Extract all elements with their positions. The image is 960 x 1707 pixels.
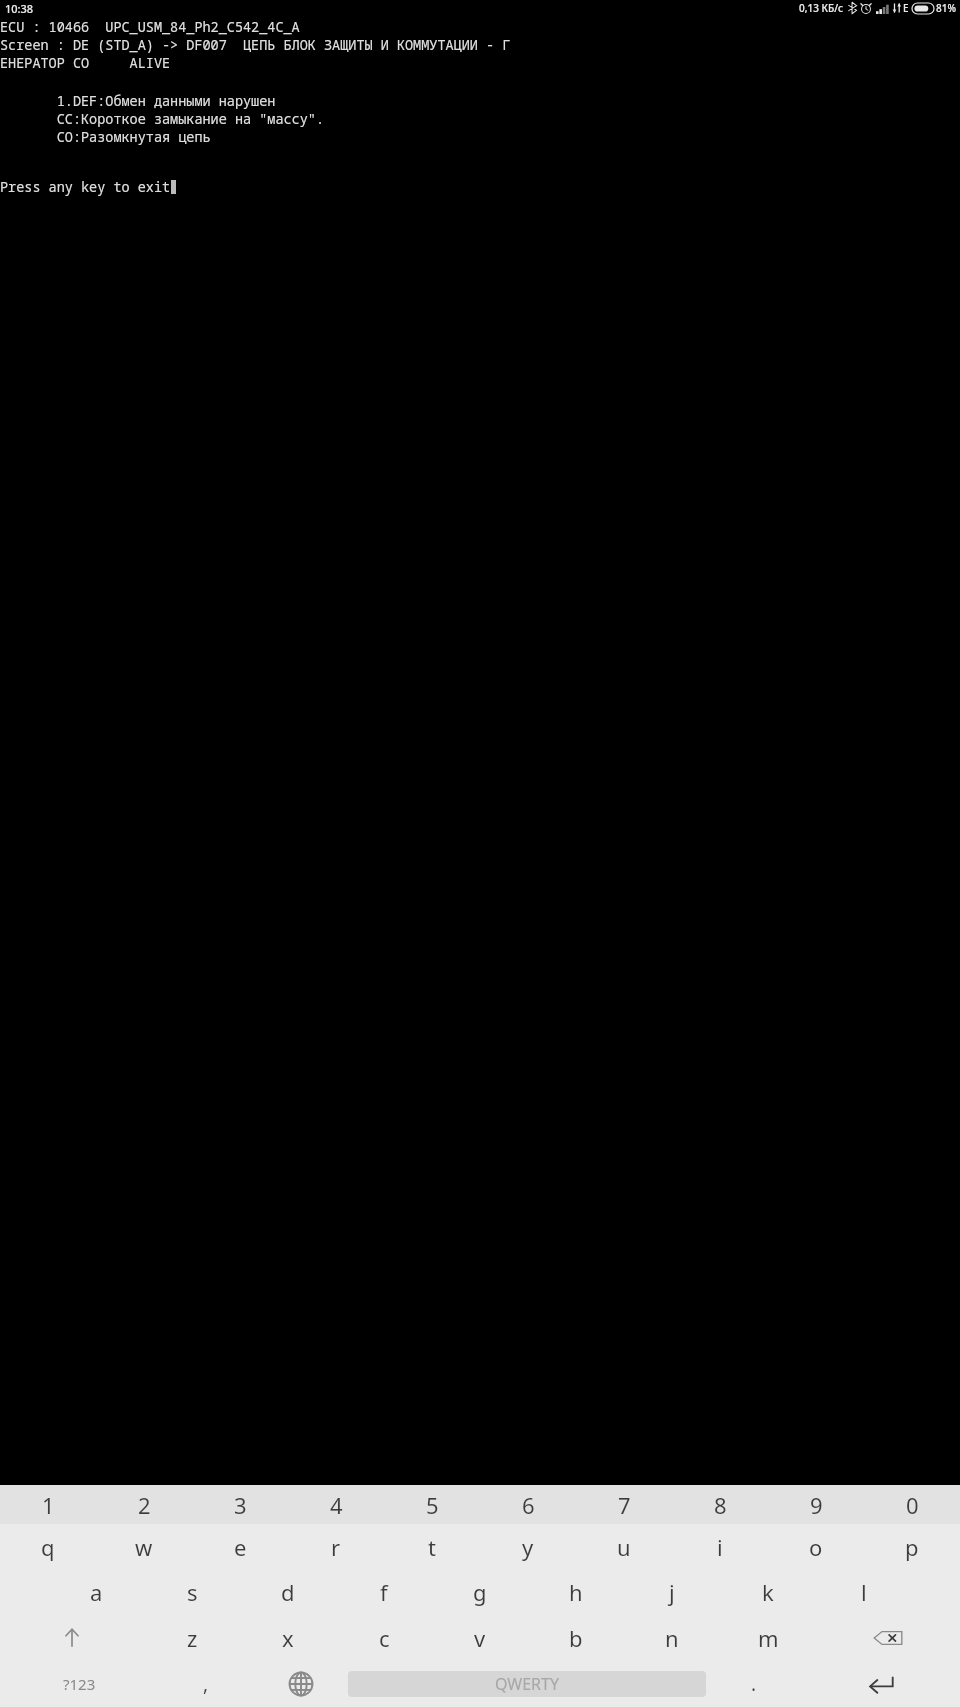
staticText: . [751, 1671, 757, 1697]
button[interactable]: i [672, 1524, 768, 1569]
button[interactable]: b [528, 1615, 624, 1661]
staticText: d [281, 1577, 295, 1607]
button[interactable]: f [336, 1569, 432, 1615]
button[interactable]: 5 [384, 1485, 480, 1524]
button[interactable]: d [240, 1569, 336, 1615]
staticText: s [187, 1577, 198, 1607]
staticText: v [474, 1623, 486, 1653]
button[interactable]: j [624, 1569, 720, 1615]
staticText: ЕНЕРАТОР CO ALIVE [0, 54, 171, 72]
staticText: q [41, 1532, 55, 1562]
button[interactable]: x [240, 1615, 336, 1661]
button[interactable]: 3 [192, 1485, 288, 1524]
staticText: 4 [330, 1490, 343, 1520]
staticText: k [762, 1577, 774, 1607]
staticText: j [669, 1577, 675, 1607]
button[interactable]: , [158, 1661, 253, 1707]
staticText: i [717, 1532, 723, 1562]
staticText: QWERTY [495, 1673, 560, 1695]
button[interactable]: e [192, 1524, 288, 1569]
staticText: o [809, 1532, 823, 1562]
button[interactable]: 7 [576, 1485, 672, 1524]
staticText: 5 [426, 1490, 439, 1520]
button[interactable]: 2 [96, 1485, 192, 1524]
staticText: 1 [42, 1490, 55, 1520]
button[interactable]: 1 [0, 1485, 96, 1524]
staticText: t [428, 1532, 436, 1562]
staticText: 3 [234, 1490, 247, 1520]
button[interactable]: 0 [864, 1485, 960, 1524]
button[interactable]: 9 [768, 1485, 864, 1524]
staticText: 0 [906, 1490, 919, 1520]
button[interactable]: t [384, 1524, 480, 1569]
staticText: 8 [714, 1490, 727, 1520]
staticText: Screen : DE (STD_A) -> DF007 ЦЕПЬ БЛОК З… [0, 36, 511, 54]
button[interactable]: q [0, 1524, 96, 1569]
button[interactable]: m [720, 1615, 816, 1661]
staticText: h [569, 1577, 583, 1607]
button[interactable]: r [288, 1524, 384, 1569]
staticText: m [758, 1623, 779, 1653]
button[interactable]: 4 [288, 1485, 384, 1524]
button[interactable]: . [706, 1661, 801, 1707]
staticText: CC:Короткое замыкание на "массу". [0, 110, 324, 128]
button[interactable]: n [624, 1615, 720, 1661]
button[interactable]: c [336, 1615, 432, 1661]
button[interactable]: s [144, 1569, 240, 1615]
button[interactable]: k [720, 1569, 816, 1615]
staticText: r [331, 1532, 341, 1562]
staticText: y [522, 1532, 534, 1562]
staticText: u [617, 1532, 631, 1562]
button[interactable]: Change language [253, 1661, 348, 1707]
staticText: p [905, 1532, 919, 1562]
staticText: w [135, 1532, 153, 1562]
staticText: x [282, 1623, 294, 1653]
button[interactable]: h [528, 1569, 624, 1615]
button[interactable]: ?123 [0, 1661, 158, 1707]
button[interactable]: o [768, 1524, 864, 1569]
staticText: n [665, 1623, 679, 1653]
staticText: 9 [810, 1490, 823, 1520]
staticText: CO:Разомкнутая цепь [0, 128, 211, 146]
staticText: 0,13 КБ/с [799, 1, 844, 15]
button[interactable]: y [480, 1524, 576, 1569]
button[interactable]: 6 [480, 1485, 576, 1524]
button[interactable]: QWERTY [348, 1671, 706, 1697]
button[interactable]: g [432, 1569, 528, 1615]
button[interactable]: Backspace [816, 1615, 960, 1661]
button[interactable]: l [816, 1569, 912, 1615]
button[interactable]: v [432, 1615, 528, 1661]
staticText: a [90, 1577, 103, 1607]
staticText: 6 [522, 1490, 535, 1520]
staticText: 7 [618, 1490, 631, 1520]
staticText: 81% [936, 1, 956, 15]
button[interactable]: u [576, 1524, 672, 1569]
button[interactable]: 8 [672, 1485, 768, 1524]
staticText: e [234, 1532, 247, 1562]
staticText: f [380, 1577, 388, 1607]
button[interactable]: p [864, 1524, 960, 1569]
staticText: z [187, 1623, 198, 1653]
staticText: ?123 [63, 1674, 96, 1694]
staticText: g [473, 1577, 487, 1607]
staticText: Press any key to exit [0, 178, 171, 196]
staticText: l [861, 1577, 867, 1607]
staticText: 1.DEF:Обмен данными нарушен [0, 92, 276, 110]
staticText: 2 [138, 1490, 151, 1520]
staticText: E [903, 1, 909, 15]
staticText: ECU : 10466 UPC_USM_84_Ph2_C542_4C_A [0, 18, 300, 36]
staticText: c [379, 1623, 390, 1653]
button[interactable]: Enter [801, 1661, 960, 1707]
button[interactable]: z [144, 1615, 240, 1661]
staticText: 10:38 [5, 1, 34, 16]
staticText: b [569, 1623, 583, 1653]
staticText: , [203, 1671, 209, 1697]
button[interactable]: a [48, 1569, 144, 1615]
button[interactable]: w [96, 1524, 192, 1569]
button[interactable]: Shift [0, 1615, 144, 1661]
